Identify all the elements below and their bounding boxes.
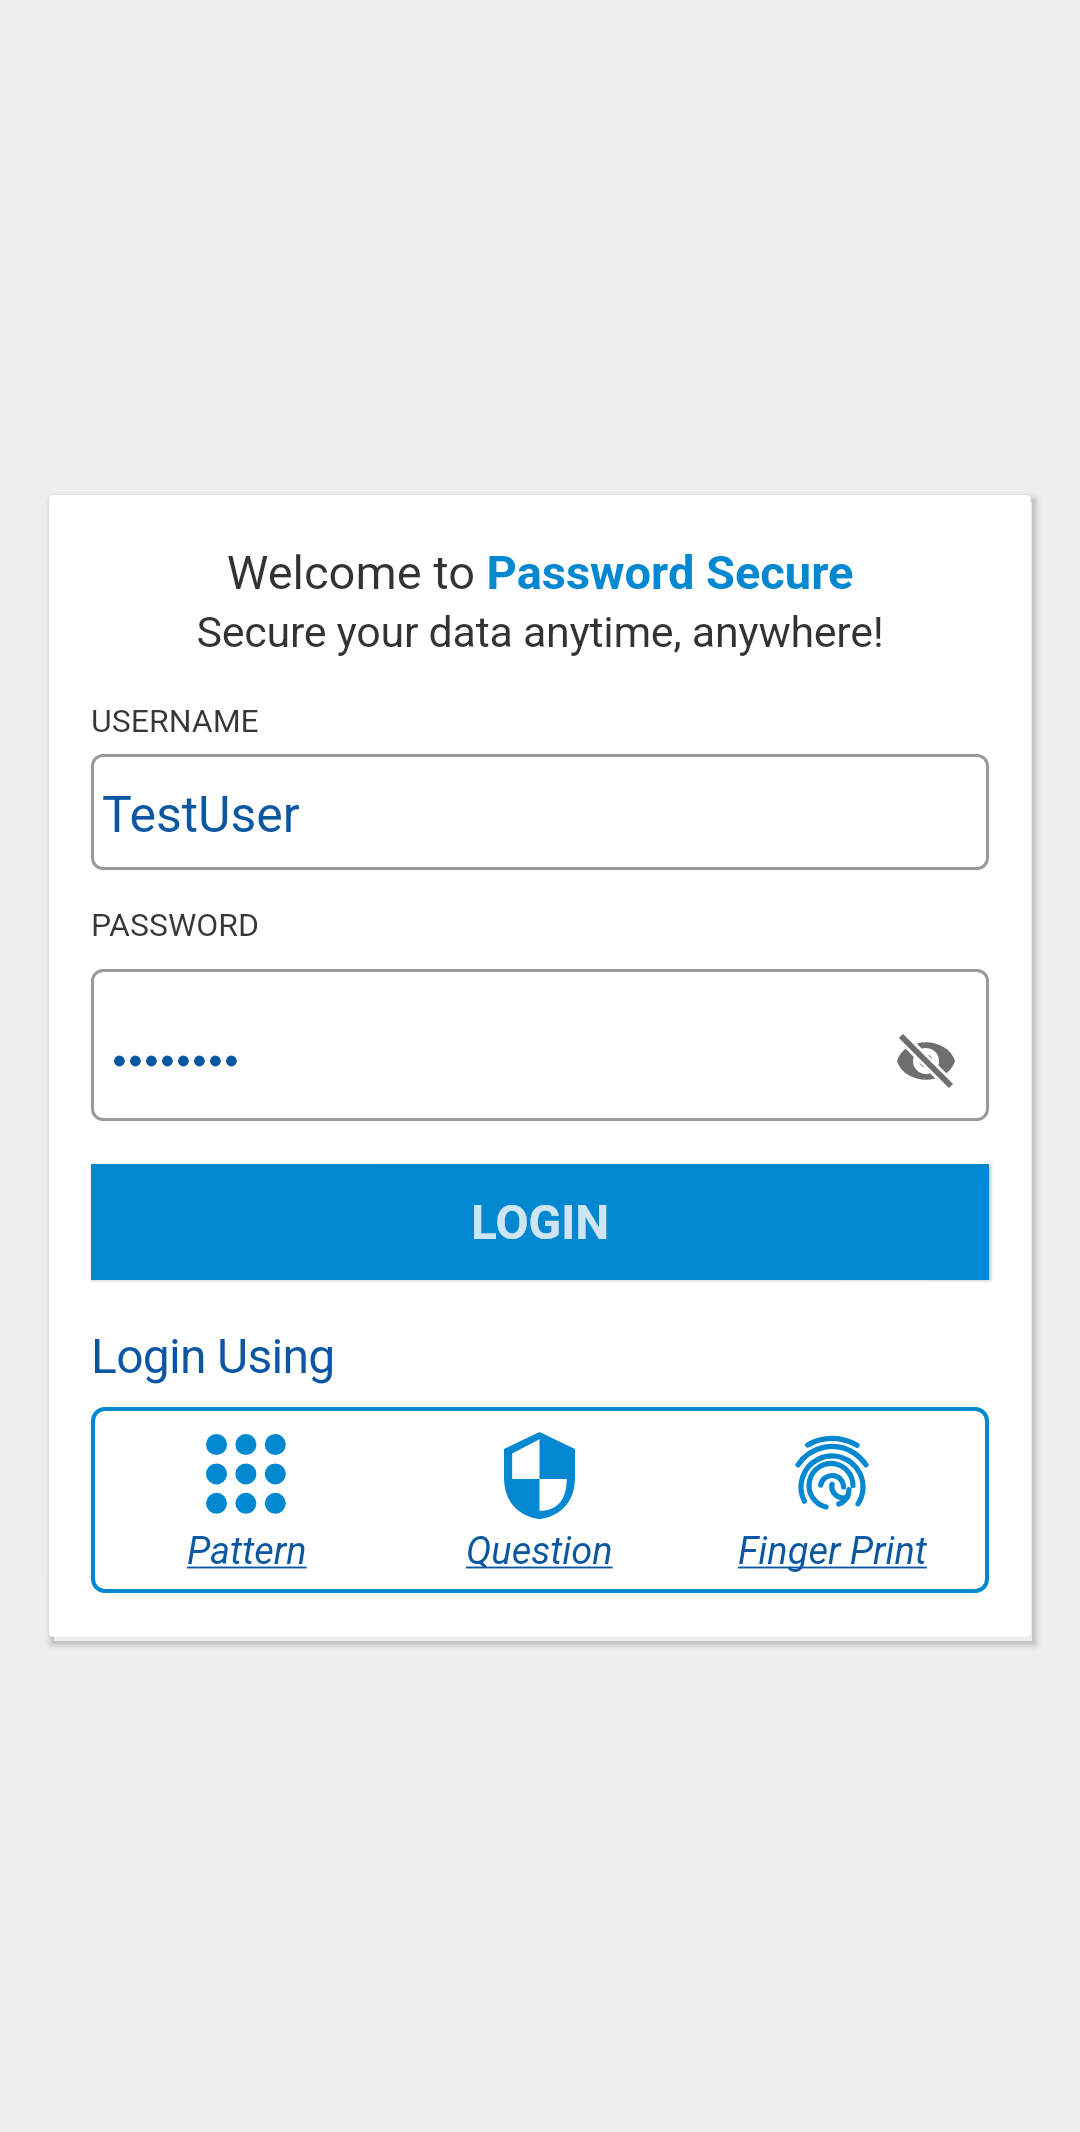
- staticText: Question: [466, 1529, 613, 1574]
- button[interactable]: Show password: [91, 969, 989, 1121]
- staticText: Pattern: [187, 1529, 307, 1574]
- button[interactable]: TestUser: [91, 754, 989, 870]
- button[interactable]: LOGIN: [91, 1164, 989, 1280]
- button[interactable]: Finger Print: [686, 1407, 979, 1593]
- staticText: Login Using: [91, 1328, 335, 1384]
- staticText: USERNAME: [91, 702, 259, 740]
- staticText: Secure your data anytime, anywhere!: [49, 607, 1031, 657]
- button[interactable]: Show password: [886, 1021, 966, 1101]
- staticText: Finger Print: [738, 1529, 927, 1574]
- staticText: Welcome to Password Secure: [49, 545, 1031, 600]
- button[interactable]: Pattern: [101, 1407, 393, 1593]
- staticText: PASSWORD: [91, 906, 260, 944]
- staticText: TestUser: [102, 786, 300, 845]
- button[interactable]: Question: [393, 1407, 686, 1593]
- staticText: LOGIN: [471, 1194, 610, 1250]
